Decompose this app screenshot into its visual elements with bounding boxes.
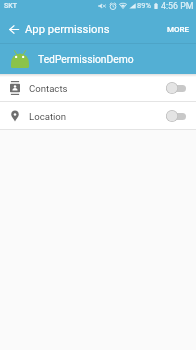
button[interactable]: Toggle permission: [166, 81, 186, 95]
staticText: 89%: [137, 1, 151, 10]
button[interactable]: Navigate up: [4, 15, 24, 44]
staticText: Location: [29, 111, 67, 122]
staticText: MORE: [167, 25, 190, 34]
staticText: SKT: [4, 2, 17, 10]
staticText: TedPermissionDemo: [38, 53, 134, 65]
button[interactable]: Contacts: [0, 74, 196, 101]
button[interactable]: TedPermissionDemo: [0, 44, 196, 74]
button[interactable]: MORE: [160, 15, 196, 44]
staticText: 4:56 PM: [161, 1, 194, 11]
staticText: App permissions: [25, 23, 110, 36]
staticText: Contacts: [29, 83, 68, 94]
button[interactable]: Location: [0, 102, 196, 129]
button[interactable]: Toggle permission: [166, 109, 186, 123]
